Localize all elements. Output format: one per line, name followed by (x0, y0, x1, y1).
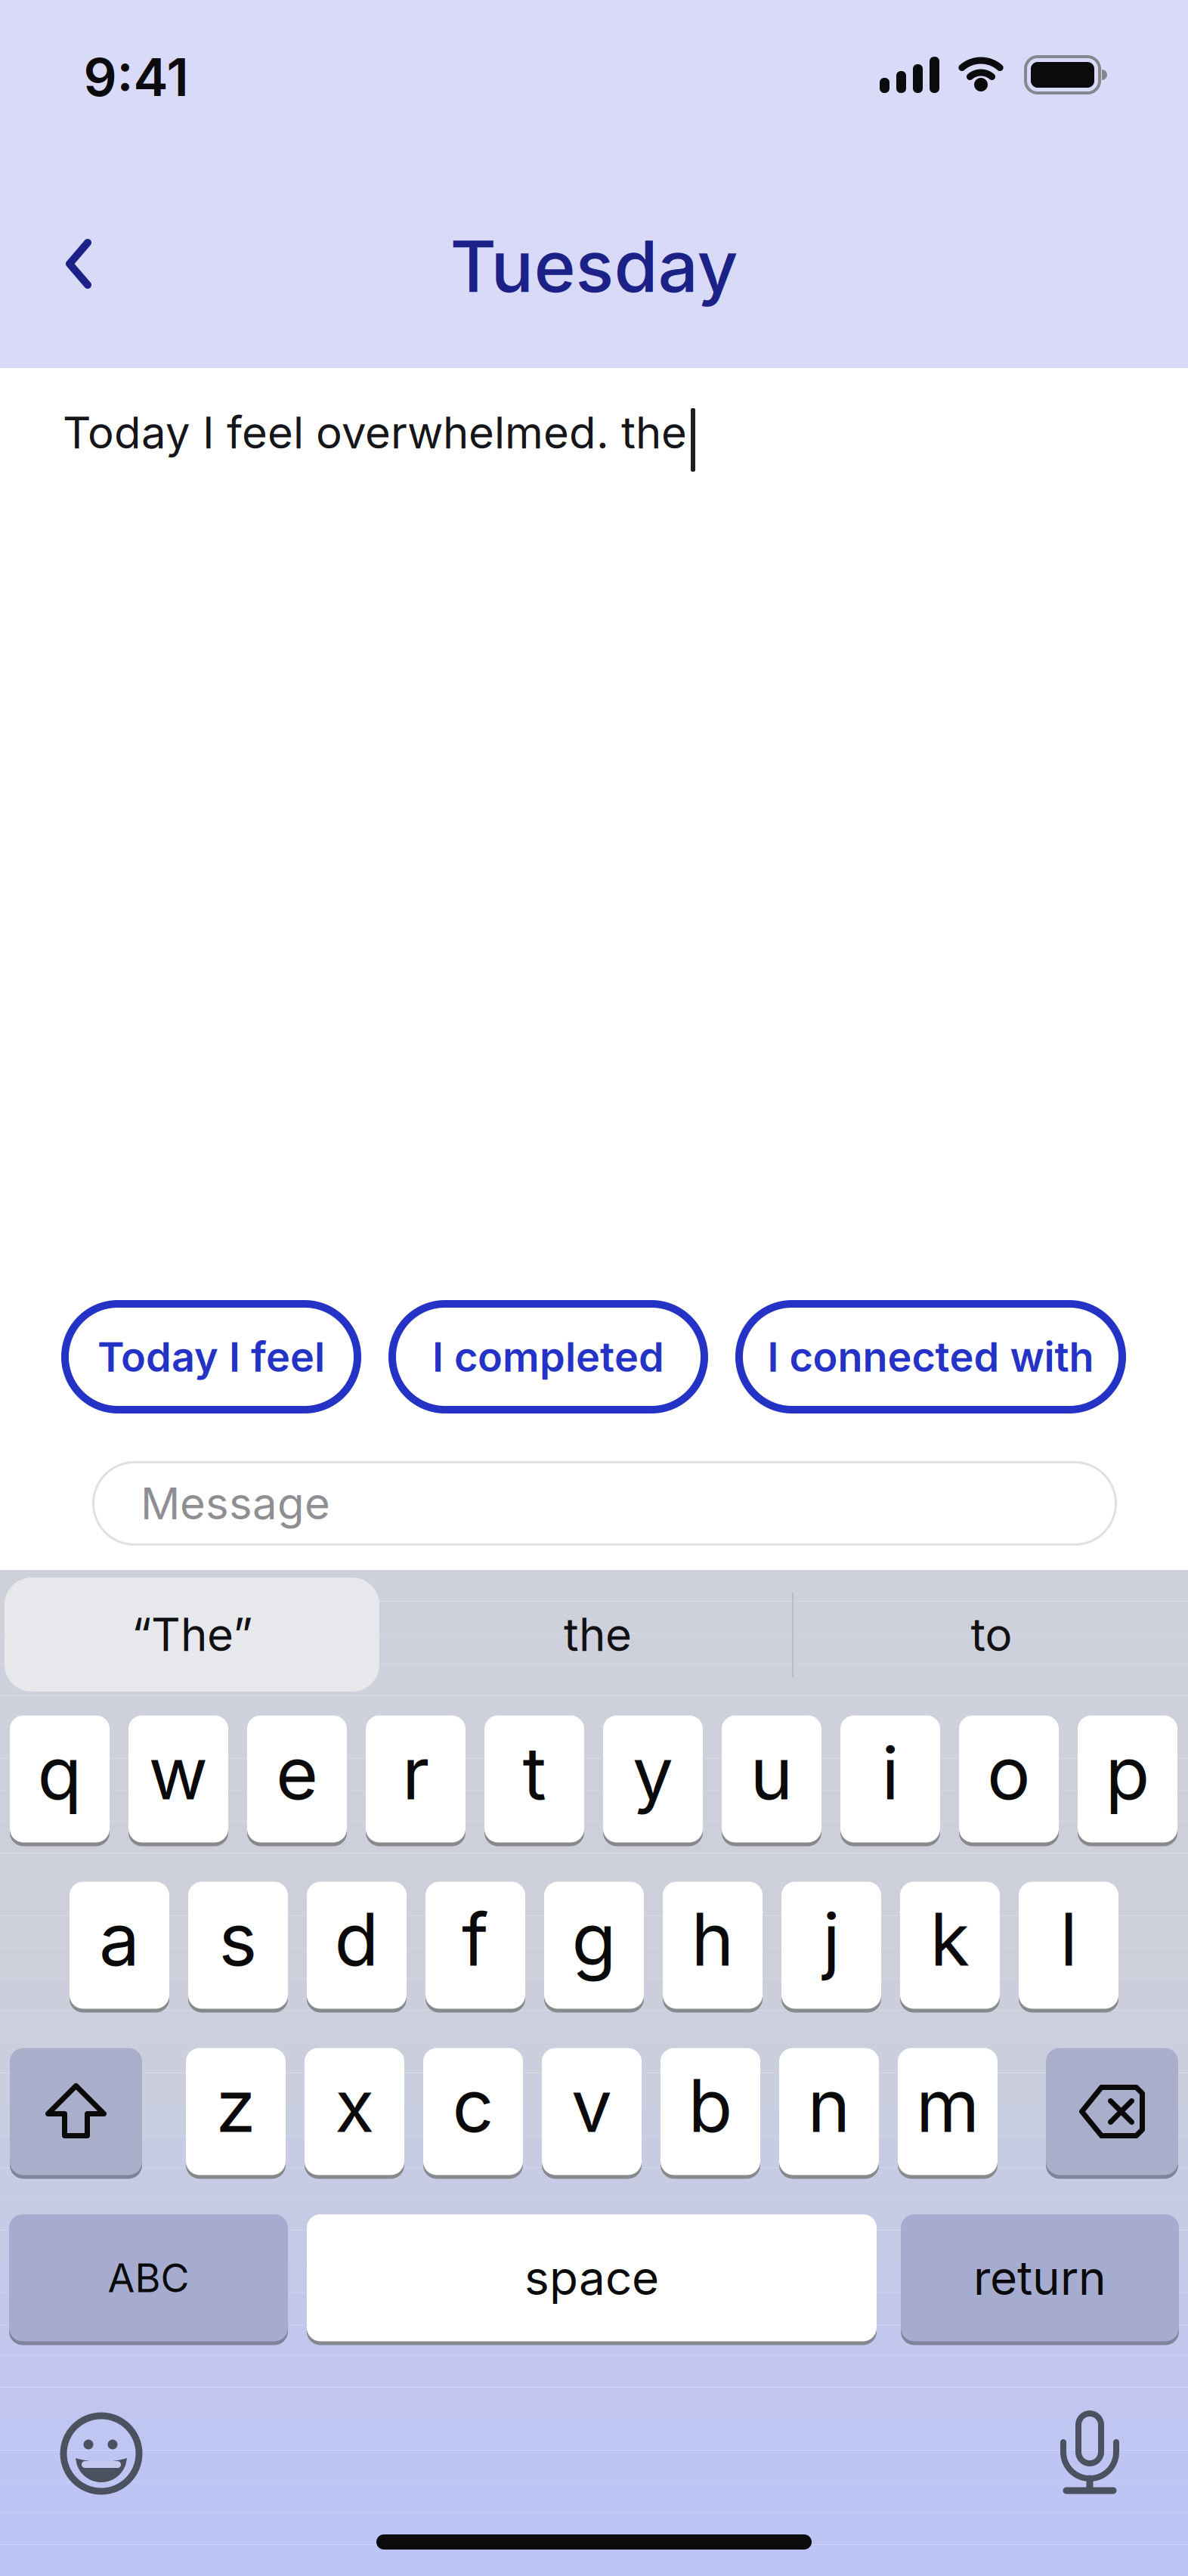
button[interactable]: q (10, 1714, 110, 1844)
button[interactable]: s (188, 1880, 288, 2011)
button[interactable]: the (382, 1577, 813, 1692)
button[interactable]: I completed (388, 1300, 708, 1413)
button[interactable]: to (795, 1577, 1188, 1692)
button[interactable]: f (425, 1880, 525, 2011)
button[interactable]: b (661, 2046, 760, 2177)
staticText: v (571, 2062, 612, 2149)
staticText: “The” (131, 1607, 252, 1662)
staticText: I completed (432, 1332, 664, 1381)
button[interactable]: k (900, 1880, 1000, 2011)
staticText: the (564, 1607, 632, 1662)
staticText: e (276, 1729, 318, 1817)
button[interactable]: Emoji (59, 2411, 144, 2496)
staticText: g (572, 1895, 616, 1983)
staticText: m (916, 2062, 979, 2149)
staticText: Today I feel overwhelmed. the (63, 406, 687, 459)
button[interactable]: d (307, 1880, 407, 2011)
staticText: f (462, 1895, 489, 1983)
button[interactable]: o (959, 1714, 1059, 1844)
button[interactable]: y (603, 1714, 703, 1844)
staticText: y (633, 1729, 673, 1817)
button[interactable]: Dictation (1047, 2410, 1132, 2500)
staticText: i (882, 1729, 899, 1817)
staticText: j (823, 1895, 840, 1983)
staticText: c (452, 2062, 494, 2149)
staticText: k (930, 1895, 970, 1983)
button[interactable]: “The” (5, 1577, 379, 1692)
staticText: b (688, 2062, 733, 2149)
staticText: q (37, 1729, 82, 1817)
button[interactable]: Today I feel (61, 1300, 361, 1413)
button[interactable]: v (542, 2046, 642, 2177)
button[interactable]: p (1078, 1714, 1177, 1844)
button[interactable]: r (366, 1714, 466, 1844)
button[interactable]: m (898, 2046, 998, 2177)
staticText: space (524, 2249, 659, 2306)
button[interactable]: Switch keyboard (9, 2212, 288, 2343)
button[interactable]: h (663, 1880, 763, 2011)
button[interactable]: x (305, 2046, 404, 2177)
staticText: u (750, 1729, 793, 1817)
button[interactable]: space (307, 2212, 877, 2343)
staticText: s (219, 1895, 257, 1983)
button[interactable]: z (186, 2046, 286, 2177)
button[interactable]: l (1019, 1880, 1118, 2011)
staticText: n (807, 2062, 851, 2149)
staticText: z (216, 2062, 256, 2149)
staticText: Tuesday (450, 223, 738, 309)
staticText: x (335, 2062, 374, 2149)
button[interactable]: g (544, 1880, 644, 2011)
staticText: Message (141, 1477, 330, 1530)
button[interactable]: t (484, 1714, 584, 1844)
button[interactable]: u (722, 1714, 821, 1844)
button[interactable]: Return (901, 2212, 1179, 2343)
button[interactable]: I connected with (735, 1300, 1126, 1413)
button[interactable]: Delete (1046, 2046, 1178, 2177)
staticText: a (99, 1895, 140, 1983)
button[interactable]: w (128, 1714, 228, 1844)
staticText: l (1060, 1895, 1077, 1983)
staticText: o (987, 1729, 1031, 1817)
staticText: w (148, 1729, 208, 1817)
staticText: return (973, 2249, 1106, 2306)
button[interactable]: n (779, 2046, 879, 2177)
staticText: r (402, 1729, 429, 1817)
staticText: I connected with (767, 1332, 1094, 1381)
button[interactable]: Back (48, 221, 110, 308)
staticText: ABC (108, 2254, 189, 2302)
button[interactable]: a (70, 1880, 169, 2011)
button[interactable]: e (247, 1714, 347, 1844)
staticText: Today I feel (97, 1332, 325, 1381)
button[interactable]: c (423, 2046, 523, 2177)
button[interactable]: i (840, 1714, 940, 1844)
button[interactable]: Shift (10, 2046, 142, 2177)
staticText: to (971, 1607, 1012, 1662)
staticText: 9:41 (84, 46, 189, 109)
button[interactable]: Message (92, 1461, 1117, 1546)
staticText: t (523, 1729, 546, 1817)
staticText: d (334, 1895, 379, 1983)
staticText: p (1105, 1729, 1150, 1817)
button[interactable]: j (781, 1880, 881, 2011)
staticText: h (691, 1895, 734, 1983)
